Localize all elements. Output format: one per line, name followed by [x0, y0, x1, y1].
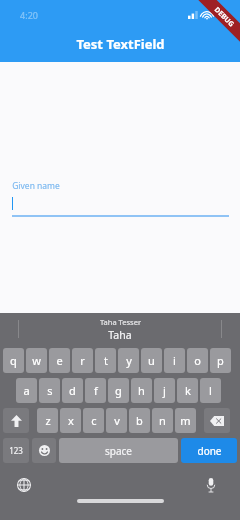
staticText: k	[185, 383, 191, 398]
button[interactable]: Emoji	[32, 438, 56, 463]
button[interactable]: Taha Tesser	[0, 313, 240, 342]
button[interactable]: x	[60, 408, 81, 433]
button[interactable]: Voice input	[200, 474, 222, 496]
staticText: t	[104, 353, 108, 368]
staticText: r	[80, 353, 85, 368]
staticText: j	[163, 383, 166, 398]
staticText: y	[126, 353, 132, 368]
button[interactable]: v	[106, 408, 127, 433]
staticText: l	[209, 383, 212, 398]
staticText: a	[23, 383, 30, 398]
staticText: d	[69, 383, 76, 398]
button[interactable]: e	[49, 348, 70, 373]
staticText: space	[105, 444, 132, 458]
staticText: Taha	[108, 328, 132, 342]
staticText: v	[114, 413, 120, 428]
staticText: b	[136, 413, 143, 428]
button[interactable]: f	[85, 378, 106, 403]
button[interactable]: Shift	[3, 408, 29, 433]
button[interactable]: space	[59, 438, 178, 463]
button[interactable]: p	[210, 348, 231, 373]
button[interactable]: g	[108, 378, 129, 403]
staticText: 4:20	[20, 9, 38, 21]
staticText: n	[159, 413, 166, 428]
staticText: g	[115, 383, 122, 398]
button[interactable]: m	[175, 408, 196, 433]
staticText: h	[138, 383, 145, 398]
button[interactable]: Change keyboard language	[13, 474, 35, 496]
button[interactable]: done	[181, 438, 237, 463]
button[interactable]: z	[37, 408, 58, 433]
button[interactable]: i	[164, 348, 185, 373]
button[interactable]: y	[118, 348, 139, 373]
button[interactable]: w	[26, 348, 47, 373]
button[interactable]: d	[62, 378, 83, 403]
button[interactable]: j	[154, 378, 175, 403]
button[interactable]: q	[3, 348, 24, 373]
button[interactable]: a	[16, 378, 37, 403]
staticText: Test TextField	[76, 35, 165, 53]
staticText: Taha Tesser	[100, 317, 141, 327]
button[interactable]: Backspace	[204, 408, 230, 433]
staticText: x	[68, 413, 74, 428]
staticText: e	[56, 353, 63, 368]
button[interactable]: r	[72, 348, 93, 373]
button[interactable]: c	[83, 408, 104, 433]
button[interactable]: t	[95, 348, 116, 373]
button[interactable]: u	[141, 348, 162, 373]
staticText: z	[45, 413, 51, 428]
staticText: i	[173, 353, 176, 368]
staticText: w	[32, 353, 41, 368]
staticText: p	[217, 353, 224, 368]
staticText: f	[94, 383, 98, 398]
staticText: q	[10, 353, 17, 368]
staticText: DEBUG	[212, 5, 236, 29]
button[interactable]: k	[177, 378, 198, 403]
staticText: 123	[9, 445, 23, 456]
staticText: u	[148, 353, 155, 368]
staticText: done	[197, 444, 222, 458]
staticText: m	[180, 413, 191, 428]
button[interactable]: o	[187, 348, 208, 373]
button[interactable]: h	[131, 378, 152, 403]
button[interactable]: l	[200, 378, 221, 403]
button[interactable]	[12, 197, 229, 215]
staticText: c	[91, 413, 97, 428]
staticText: Given name	[12, 180, 60, 192]
button[interactable]: s	[39, 378, 60, 403]
button[interactable]: b	[129, 408, 150, 433]
staticText: s	[47, 383, 53, 398]
button[interactable]: n	[152, 408, 173, 433]
staticText: o	[194, 353, 201, 368]
button[interactable]: 123	[3, 438, 29, 463]
